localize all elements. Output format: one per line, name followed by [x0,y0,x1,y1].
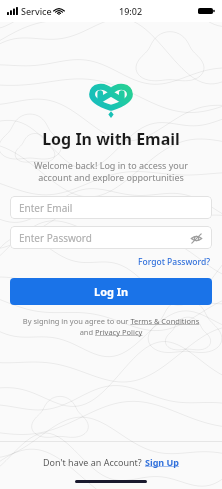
button[interactable]: Enter Password [10,226,212,249]
staticText: Service [21,5,52,17]
button[interactable]: Forgot Password? [136,255,212,269]
staticText: Log In with Email [42,128,180,150]
staticText: Enter Email [19,201,73,215]
button[interactable]: By signing in you agree to our Terms & C… [20,316,202,337]
staticText: Don't have an Account? [43,456,145,468]
button[interactable]: Show password [190,232,203,245]
button[interactable]: Enter Email [10,196,212,219]
staticText: Enter Password [19,231,190,245]
button[interactable]: Sign Up [145,456,180,468]
staticText: Forgot Password? [138,256,210,268]
button[interactable]: Log In [10,278,212,305]
staticText: 19:02 [119,5,143,17]
staticText: Welcome back! Log in to access your acco… [18,159,204,184]
staticText: Sign Up [145,456,180,468]
staticText: Log In [94,284,129,299]
